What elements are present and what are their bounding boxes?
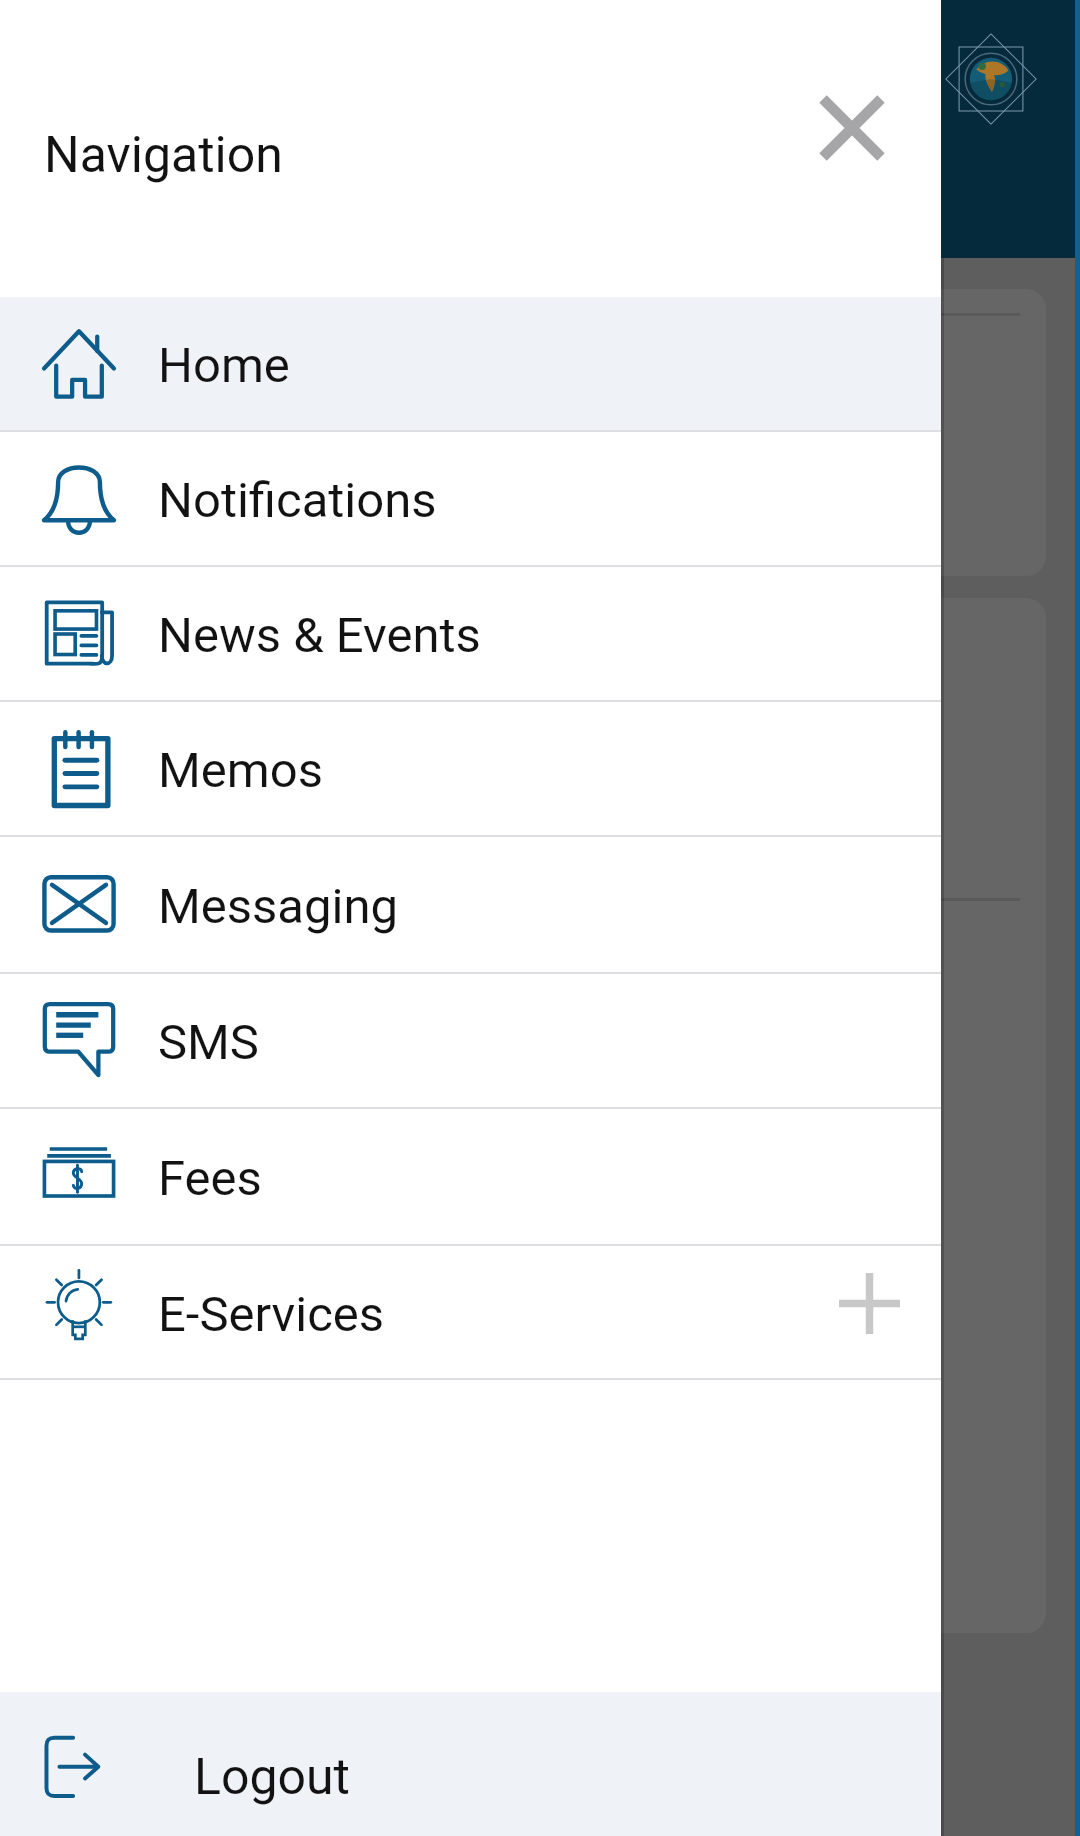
staticText: SMS xyxy=(158,1014,259,1071)
button[interactable]: Notifications xyxy=(0,432,941,565)
staticText: E-Services xyxy=(158,1286,385,1343)
button[interactable]: SMS xyxy=(0,974,941,1107)
button[interactable]: Memos xyxy=(0,702,941,835)
staticText: Messaging xyxy=(158,878,398,935)
staticText: Fees xyxy=(158,1150,262,1207)
button[interactable]: News & Events xyxy=(0,567,941,700)
button[interactable]: Messaging xyxy=(0,837,941,972)
staticText: Notifications xyxy=(158,472,437,529)
button[interactable]: Logout xyxy=(0,1692,941,1836)
button[interactable]: Fees xyxy=(0,1109,941,1244)
button[interactable]: Expand E-Services xyxy=(817,1251,921,1355)
staticText: 0304 - 718- xyxy=(52,685,272,737)
staticText: Logout xyxy=(194,1748,350,1807)
staticText: Memos xyxy=(158,742,323,799)
button[interactable]: E-Services xyxy=(0,1246,941,1378)
button[interactable]: Close navigation xyxy=(800,76,904,180)
staticText: News & Events xyxy=(158,607,481,664)
button[interactable]: Home xyxy=(0,297,941,430)
staticText: Home xyxy=(158,337,290,394)
staticText: Navigation xyxy=(44,126,283,185)
